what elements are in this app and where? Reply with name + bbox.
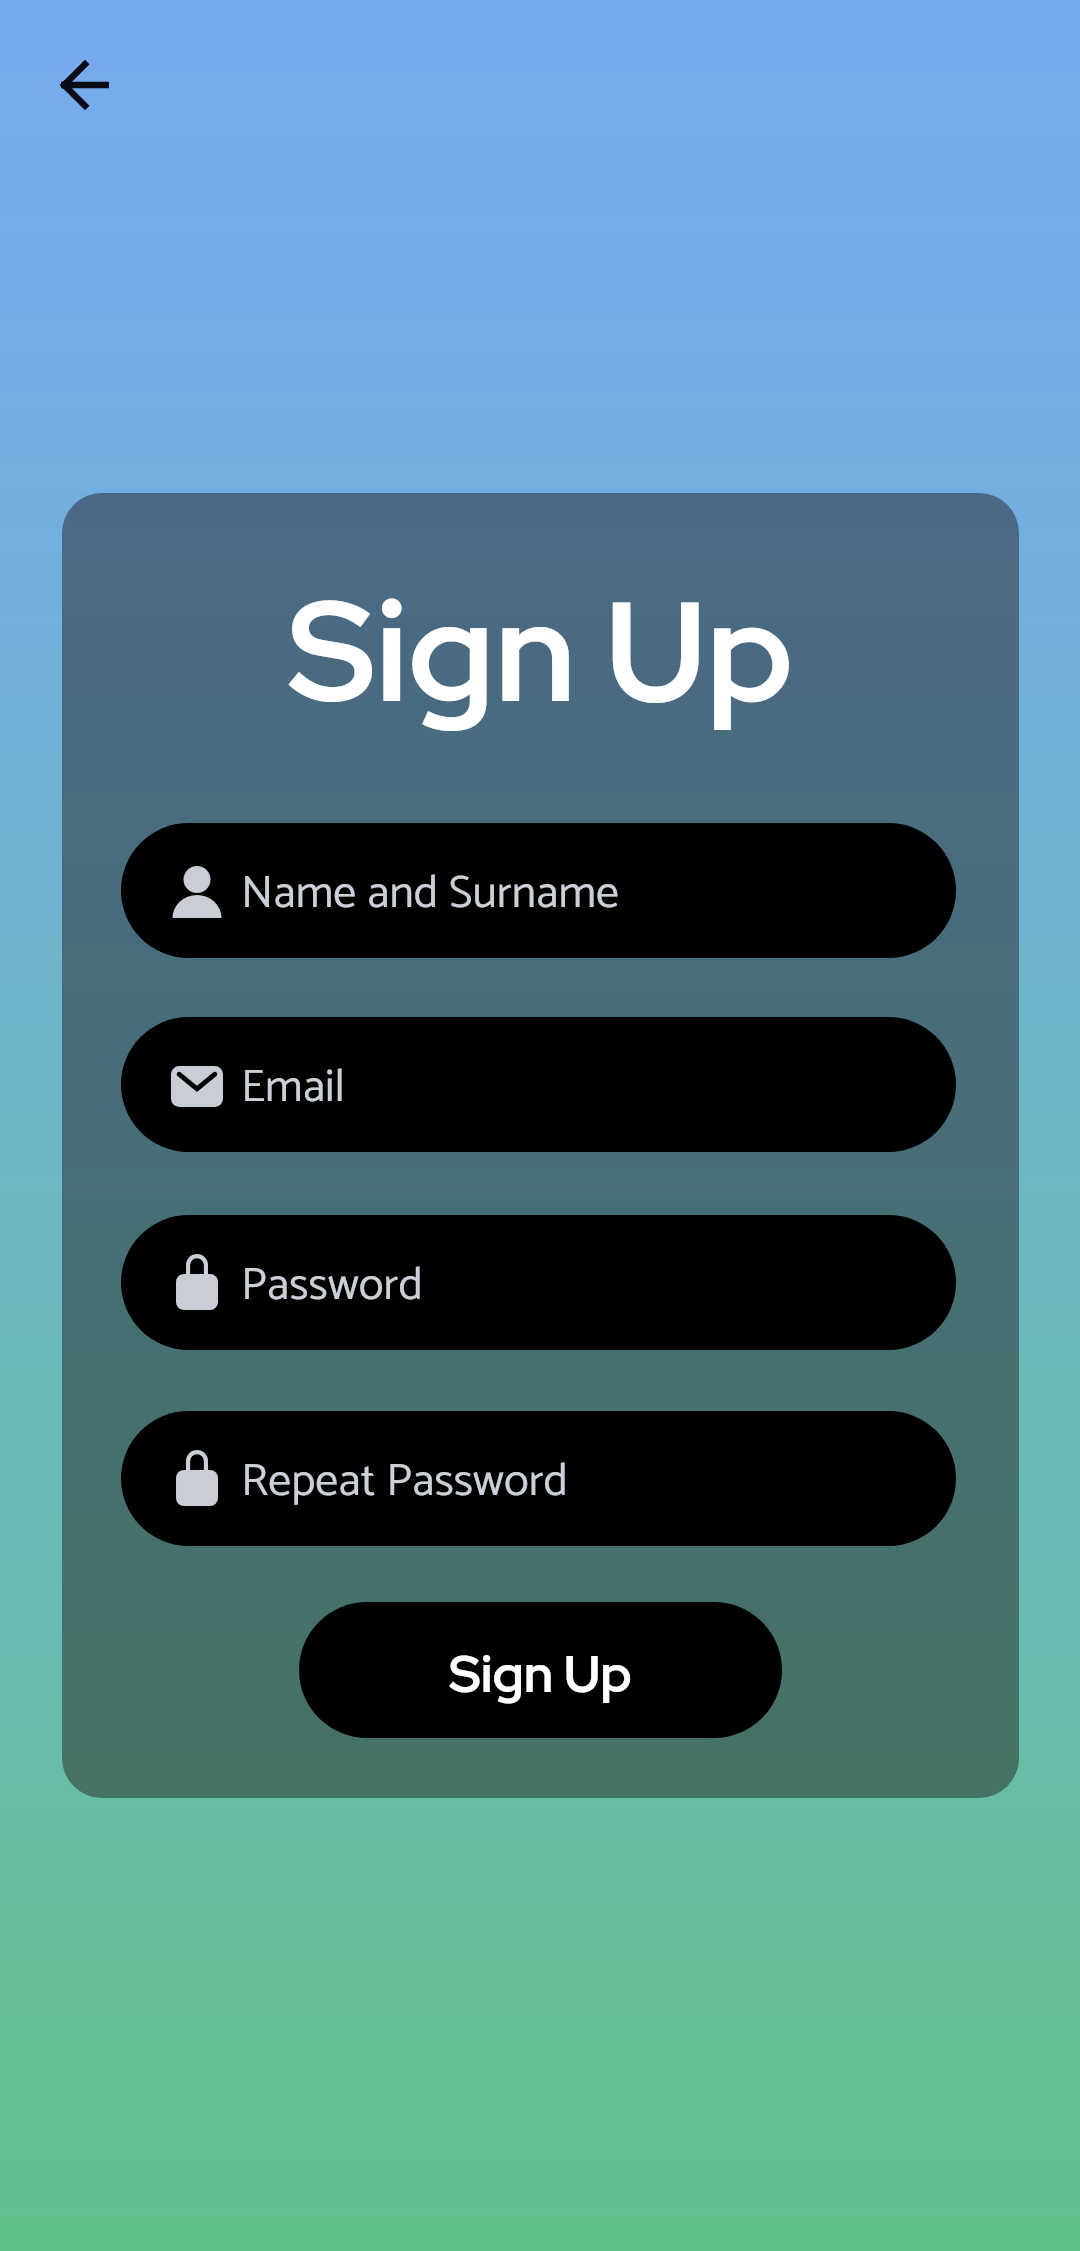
button[interactable]: Password xyxy=(121,1215,956,1350)
staticText: Name and Surname xyxy=(241,856,620,931)
staticText: Sign Up xyxy=(62,557,1019,744)
button[interactable]: Sign Up xyxy=(299,1602,782,1738)
button[interactable]: Back xyxy=(26,26,144,144)
staticText: Email xyxy=(241,1050,345,1125)
staticText: Password xyxy=(241,1248,423,1323)
button[interactable]: Name and Surname xyxy=(121,823,956,958)
staticText: Sign Up xyxy=(449,1640,632,1707)
staticText: Repeat Password xyxy=(241,1444,568,1519)
button[interactable]: Repeat Password xyxy=(121,1411,956,1546)
button[interactable]: Email xyxy=(121,1017,956,1152)
